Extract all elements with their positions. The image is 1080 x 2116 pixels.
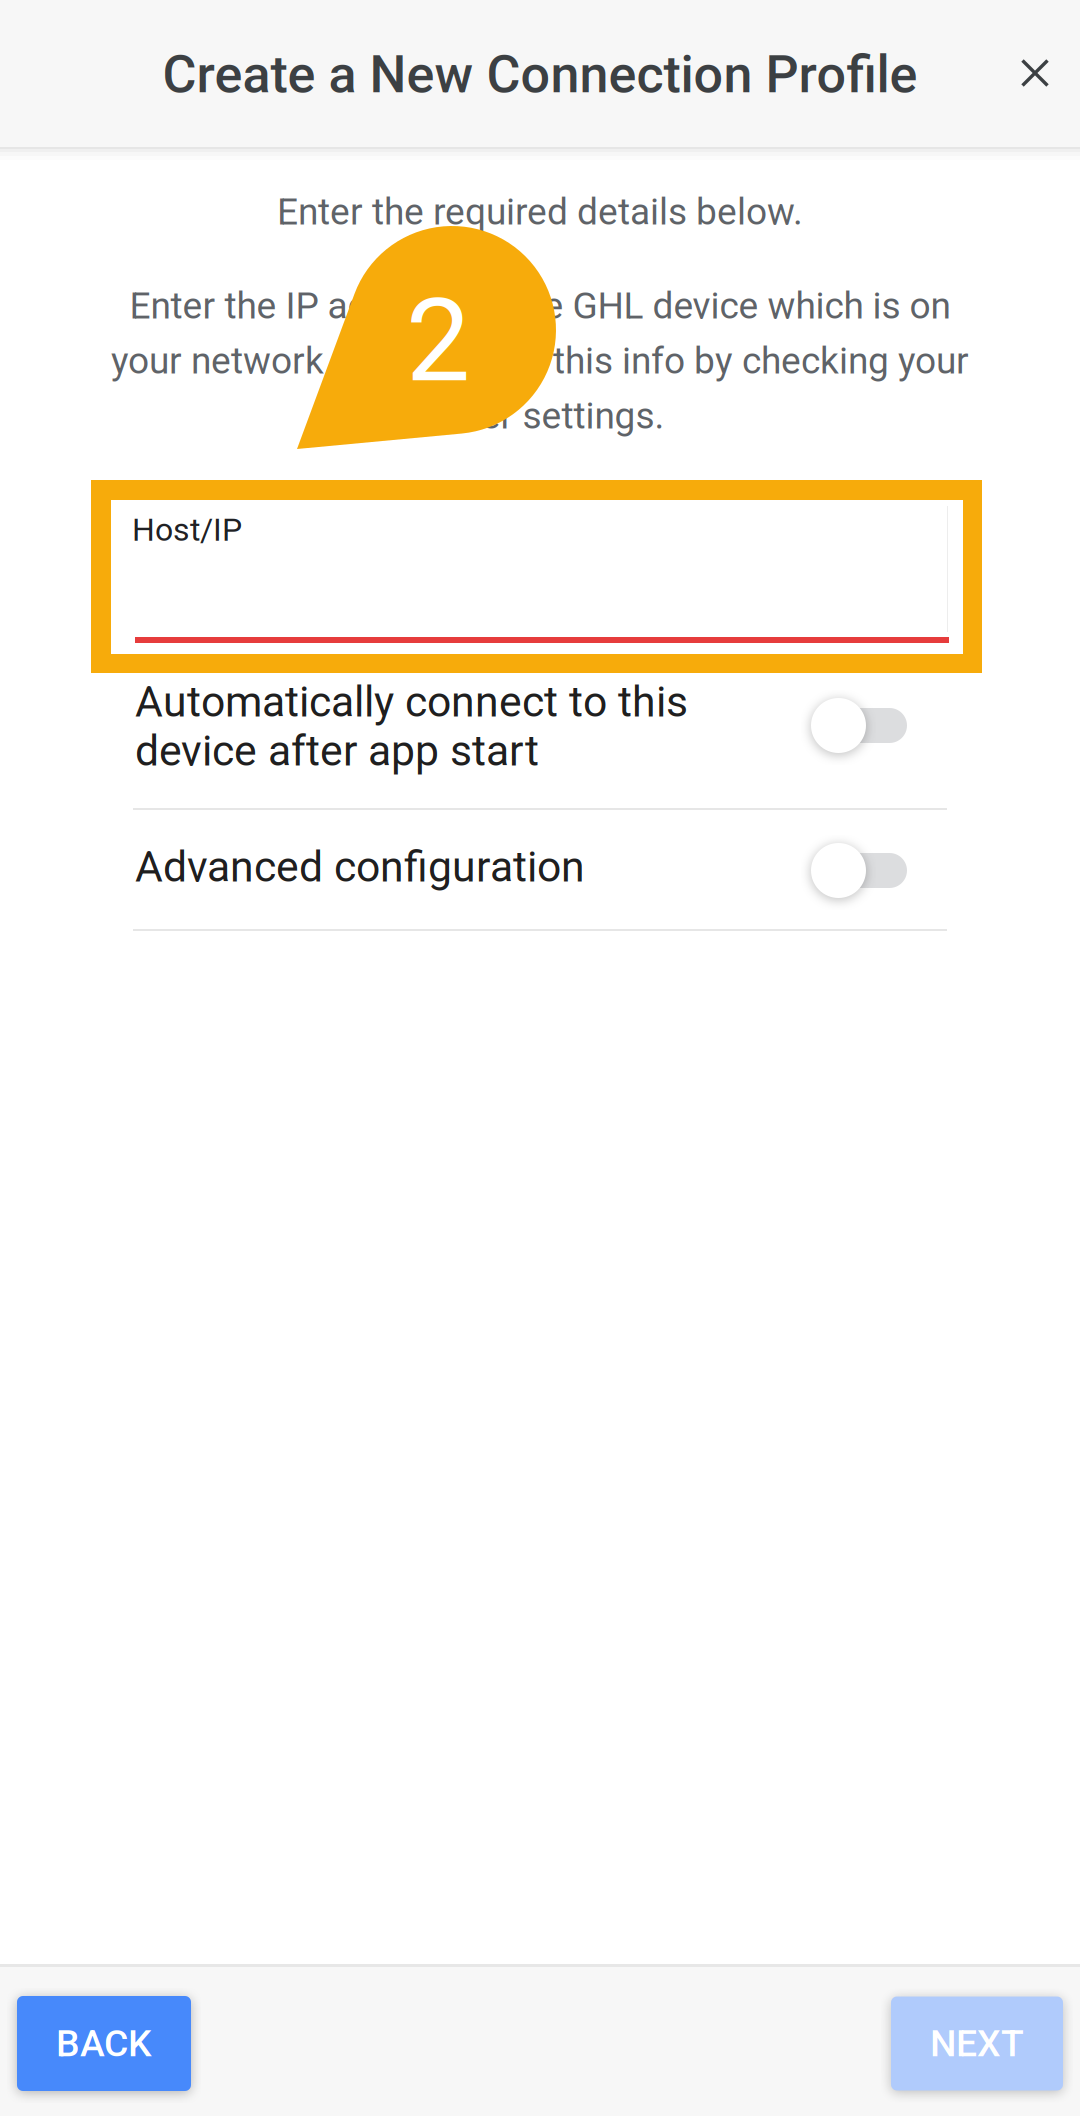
button[interactable]: NEXT (891, 1996, 1063, 2090)
staticText: 2 (406, 274, 470, 408)
button[interactable]: Host/IP (91, 480, 982, 673)
staticText: device after app start (135, 726, 539, 776)
button[interactable]: Automatically connect to this (133, 674, 947, 810)
staticText: router settings. (415, 394, 664, 437)
staticText: your network. You can find this info by … (111, 339, 969, 382)
staticText: Automatically connect to this (135, 677, 688, 727)
staticText: NEXT (930, 2022, 1024, 2065)
staticText: Advanced configuration (135, 842, 585, 892)
button[interactable]: Close (980, 18, 1080, 128)
staticText: Create a New Connection Profile (162, 44, 917, 105)
staticText: Host/IP (132, 511, 242, 548)
button[interactable]: BACK (17, 1996, 191, 2091)
staticText: BACK (56, 2022, 152, 2065)
staticText: Enter the IP address of the GHL device w… (129, 284, 950, 327)
staticText: Enter the required details below. (277, 190, 803, 233)
button[interactable]: Advanced configuration (133, 810, 947, 931)
